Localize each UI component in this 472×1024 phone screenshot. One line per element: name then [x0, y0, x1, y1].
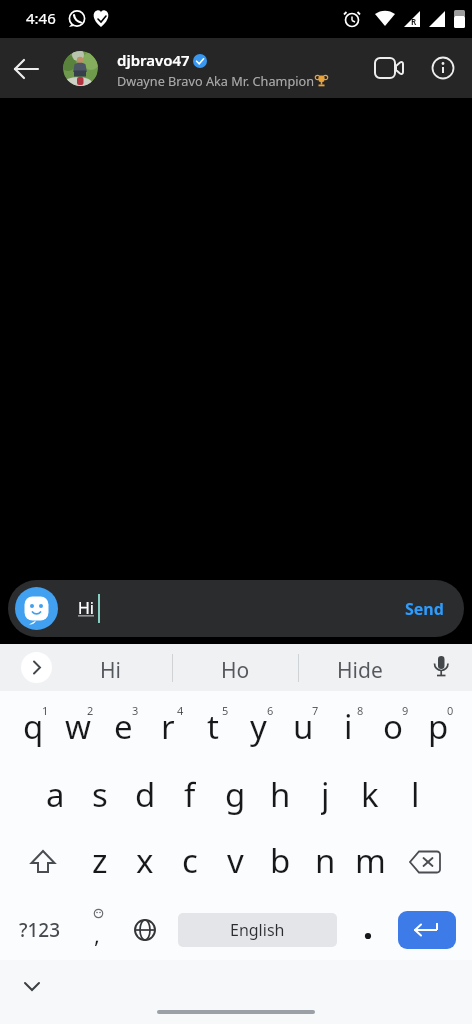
button[interactable] — [133, 918, 157, 942]
staticText: 5 — [222, 703, 229, 718]
staticText: Hide — [337, 656, 383, 685]
staticText: y — [250, 704, 267, 748]
button[interactable] — [356, 921, 380, 951]
staticText: p — [428, 704, 449, 748]
button[interactable] — [430, 654, 452, 682]
button[interactable] — [63, 51, 98, 86]
button[interactable]: s — [79, 772, 121, 816]
staticText: a — [46, 772, 65, 816]
button[interactable]: , — [85, 916, 109, 952]
button[interactable]: u — [282, 704, 324, 748]
staticText: 0 — [447, 703, 454, 718]
button[interactable] — [10, 55, 42, 83]
button[interactable]: ?123 — [12, 914, 68, 946]
staticText: Ho — [221, 656, 250, 685]
button[interactable] — [15, 587, 58, 630]
staticText: c — [182, 838, 198, 882]
button[interactable] — [28, 847, 58, 877]
staticText: Send — [405, 598, 444, 620]
staticText: k — [361, 772, 379, 816]
button[interactable]: c — [169, 838, 211, 882]
button[interactable]: i — [327, 704, 369, 748]
staticText: w — [65, 704, 91, 748]
button[interactable]: n — [304, 838, 346, 882]
button[interactable]: Hide — [328, 647, 392, 694]
button[interactable]: d — [124, 772, 166, 816]
button[interactable]: b — [259, 838, 301, 882]
button[interactable]: p — [417, 704, 459, 748]
staticText: Hi — [100, 656, 121, 685]
staticText: 2 — [87, 703, 94, 718]
staticText: t — [207, 704, 219, 748]
button[interactable]: English — [178, 913, 337, 947]
button[interactable]: g — [214, 772, 256, 816]
button[interactable]: v — [214, 838, 256, 882]
staticText: R — [411, 16, 417, 27]
staticText: djbravo47 — [117, 50, 190, 70]
staticText: z — [92, 838, 108, 882]
staticText: o — [383, 704, 403, 748]
staticText: Hi — [78, 597, 94, 619]
staticText: x — [136, 838, 154, 882]
staticText: 4 — [177, 703, 184, 718]
staticText: j — [321, 772, 330, 816]
staticText: i — [344, 704, 353, 748]
button[interactable] — [374, 57, 406, 79]
staticText: 1 — [42, 703, 49, 718]
staticText: 9 — [402, 703, 409, 718]
button[interactable]: Hi — [80, 647, 140, 694]
staticText: d — [135, 772, 156, 816]
button[interactable] — [22, 978, 42, 994]
button[interactable] — [398, 911, 456, 949]
button[interactable]: e — [102, 704, 144, 748]
button[interactable]: Send — [405, 598, 444, 620]
button[interactable]: y — [237, 704, 279, 748]
button[interactable]: a — [34, 772, 76, 816]
button[interactable]: o — [372, 704, 414, 748]
button[interactable]: l — [394, 772, 436, 816]
staticText: m — [355, 838, 386, 882]
button[interactable] — [431, 57, 455, 81]
staticText: 3 — [132, 703, 139, 718]
staticText: v — [227, 838, 244, 882]
button[interactable]: t — [192, 704, 234, 748]
staticText: 8 — [357, 703, 364, 718]
button[interactable]: z — [79, 838, 121, 882]
staticText: g — [225, 772, 246, 816]
staticText: Dwayne Bravo Aka Mr. Champion — [117, 72, 315, 89]
staticText: English — [230, 919, 285, 941]
staticText: u — [293, 704, 314, 748]
button[interactable]: w — [57, 704, 99, 748]
staticText: e — [114, 704, 133, 748]
staticText: ?123 — [19, 917, 61, 943]
button[interactable]: f — [169, 772, 211, 816]
button[interactable]: j — [304, 772, 346, 816]
staticText: 6 — [267, 703, 274, 718]
staticText: s — [92, 772, 108, 816]
button[interactable]: Hi — [8, 580, 464, 637]
staticText: f — [184, 772, 196, 816]
staticText: r — [161, 704, 175, 748]
staticText: 7 — [312, 703, 319, 718]
staticText: h — [270, 772, 291, 816]
staticText: , — [94, 919, 100, 949]
button[interactable]: q — [12, 704, 54, 748]
staticText: n — [315, 838, 336, 882]
button[interactable] — [408, 849, 442, 875]
button[interactable]: k — [349, 772, 391, 816]
staticText: b — [270, 838, 291, 882]
button[interactable]: x — [124, 838, 166, 882]
staticText: l — [411, 772, 420, 816]
staticText: 4:46 — [26, 8, 56, 28]
staticText: q — [23, 704, 44, 748]
button[interactable] — [21, 652, 52, 683]
button[interactable]: r — [147, 704, 189, 748]
button[interactable]: m — [349, 838, 391, 882]
button[interactable]: h — [259, 772, 301, 816]
button[interactable]: Ho — [205, 647, 265, 694]
